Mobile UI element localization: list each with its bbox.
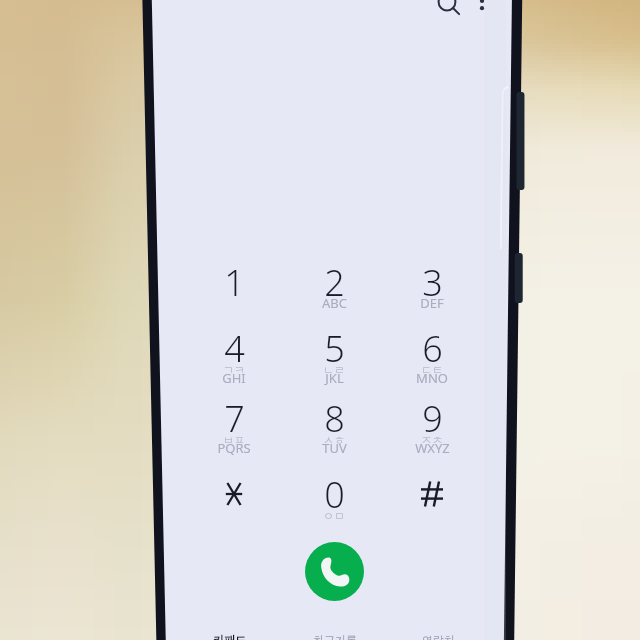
- staticText: ABC: [322, 294, 347, 312]
- staticText: DEF: [420, 294, 444, 312]
- staticText: 최근기록: [313, 633, 357, 640]
- button[interactable]: [384, 315, 480, 381]
- staticText: 4: [224, 324, 245, 372]
- button[interactable]: 최근기록: [280, 633, 390, 640]
- button[interactable]: [384, 249, 480, 315]
- button[interactable]: [186, 315, 282, 381]
- staticText: ㄷㅌ: [421, 363, 443, 377]
- button[interactable]: [384, 461, 480, 527]
- staticText: JKL: [325, 369, 344, 387]
- staticText: ㅅㅎ: [323, 433, 345, 447]
- staticText: 3: [422, 258, 443, 306]
- staticText: WXYZ: [415, 439, 450, 457]
- staticText: 9: [422, 394, 443, 442]
- staticText: PQRS: [217, 439, 251, 457]
- button[interactable]: 키패드: [174, 633, 284, 640]
- staticText: 5: [324, 324, 345, 372]
- button[interactable]: [186, 461, 282, 527]
- staticText: MNO: [416, 369, 448, 387]
- staticText: 7: [224, 394, 245, 442]
- button[interactable]: Search: [425, 0, 469, 24]
- staticText: ㅇㅁ: [323, 509, 345, 523]
- staticText: ㅈㅊ: [421, 433, 443, 447]
- staticText: 키패드: [213, 633, 246, 640]
- staticText: 연락처: [422, 633, 455, 640]
- staticText: 0: [324, 470, 345, 518]
- button[interactable]: Call: [305, 542, 364, 601]
- staticText: 8: [324, 394, 345, 442]
- staticText: ㄱㅋ: [223, 363, 245, 377]
- button[interactable]: [286, 461, 382, 527]
- button[interactable]: [186, 249, 282, 315]
- staticText: TUV: [322, 439, 347, 457]
- staticText: 2: [324, 258, 345, 306]
- button[interactable]: [286, 385, 382, 451]
- button[interactable]: [286, 315, 382, 381]
- button[interactable]: 연락처: [383, 633, 493, 640]
- staticText: ㅂㅍ: [223, 433, 245, 447]
- staticText: GHI: [222, 369, 246, 387]
- button[interactable]: [186, 385, 282, 451]
- button[interactable]: More options: [460, 0, 504, 23]
- staticText: 1: [224, 258, 245, 306]
- staticText: 6: [422, 324, 443, 372]
- button[interactable]: [286, 249, 382, 315]
- staticText: ㄴㄹ: [323, 363, 345, 377]
- button[interactable]: [384, 385, 480, 451]
